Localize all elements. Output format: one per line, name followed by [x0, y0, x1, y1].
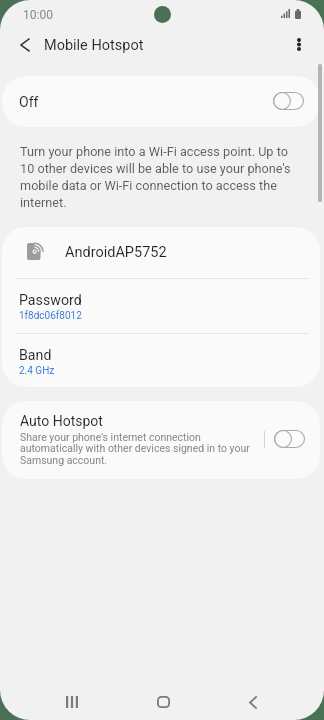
button[interactable]: More options	[280, 26, 317, 62]
staticText: Off	[19, 94, 39, 110]
staticText: Share your phone's internet connection a…	[20, 431, 252, 467]
staticText: 2.4 GHz	[19, 365, 55, 377]
staticText: AndroidAP5752	[65, 244, 167, 261]
button[interactable]: Band	[2, 334, 320, 387]
button[interactable]: Auto Hotspot	[20, 413, 252, 467]
button[interactable]: Back	[229, 680, 277, 720]
staticText: Band	[19, 347, 52, 364]
staticText: Auto Hotspot	[20, 413, 103, 429]
staticText: Mobile Hotspot	[44, 37, 144, 54]
staticText: 10:00	[23, 8, 53, 22]
button[interactable]: Recents	[48, 680, 96, 720]
button[interactable]: Password	[2, 279, 320, 333]
button[interactable]: AndroidAP5752	[2, 227, 320, 278]
staticText: Password	[19, 292, 82, 309]
staticText: Turn your phone into a Wi-Fi access poin…	[20, 144, 292, 210]
button[interactable]: Off	[2, 76, 320, 127]
button[interactable]: Back	[6, 27, 44, 63]
button[interactable]: Auto Hotspot toggle	[266, 422, 312, 456]
button[interactable]: Home	[139, 680, 187, 720]
staticText: 1f8dc06f8012	[19, 310, 82, 322]
